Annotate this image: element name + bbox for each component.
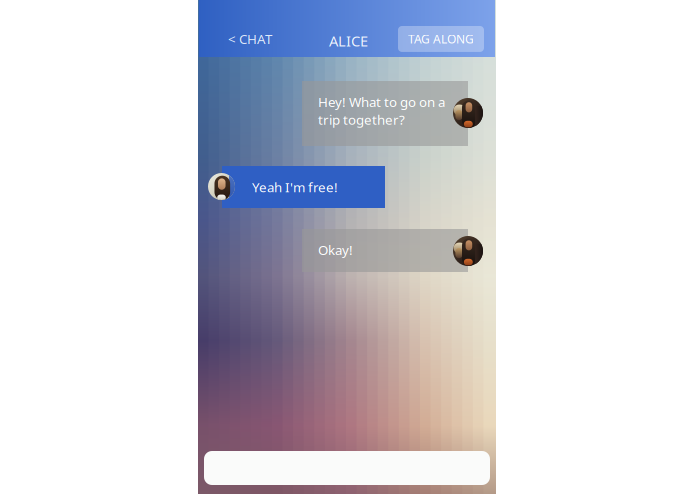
staticText: Okay! [318, 241, 353, 259]
staticText: Hey! What to go on a [318, 93, 445, 111]
staticText: ALICE [329, 31, 368, 50]
staticText: TAG ALONG [408, 31, 474, 47]
button[interactable]: Hey! What to go on a [302, 81, 468, 146]
button[interactable] [204, 451, 490, 485]
button[interactable]: TAG ALONG [398, 26, 484, 52]
staticText: trip together? [318, 111, 405, 128]
staticText: Yeah I'm free! [252, 178, 338, 196]
button[interactable]: < CHAT [218, 22, 282, 56]
button[interactable]: Okay! [302, 229, 468, 272]
staticText: < CHAT [228, 30, 272, 48]
button[interactable]: Yeah I'm free! [222, 166, 385, 208]
